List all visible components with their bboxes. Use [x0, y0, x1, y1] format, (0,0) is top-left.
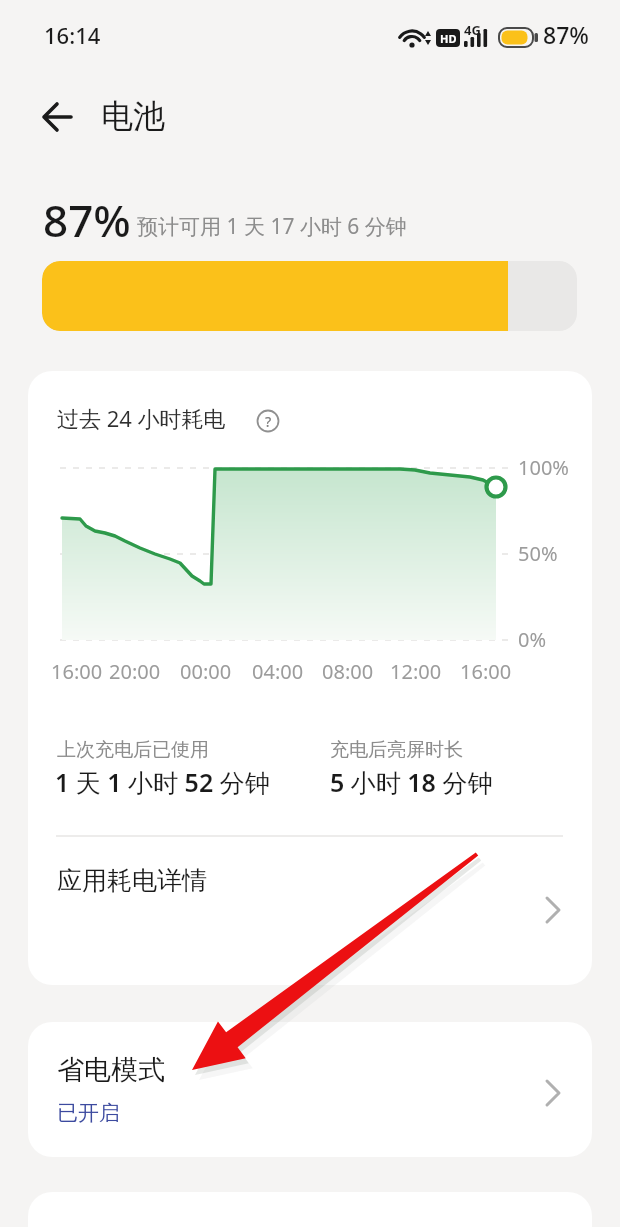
staticText: 过去 24 小时耗电	[57, 403, 226, 433]
staticText: 应用耗电详情	[57, 865, 207, 896]
staticText: 省电模式	[57, 1053, 165, 1087]
staticText: HD	[440, 31, 457, 46]
staticText: 电池	[101, 96, 165, 136]
staticText: 5 小时 18 分钟	[330, 765, 493, 799]
staticText: 08:00	[322, 658, 374, 685]
staticText: 50%	[518, 540, 558, 567]
staticText: 87%	[543, 19, 589, 50]
staticText: 87%	[43, 190, 131, 250]
staticText: 已开启	[57, 1100, 120, 1126]
staticText: 20:00	[109, 658, 161, 685]
staticText: 预计可用 1 天 17 小时 6 分钟	[137, 212, 407, 241]
staticText: 12:00	[390, 658, 442, 685]
button[interactable]: 省电模式	[28, 1022, 592, 1157]
staticText: 100%	[518, 454, 569, 481]
button[interactable]	[30, 95, 86, 151]
staticText: 上次充电后已使用	[57, 738, 209, 762]
staticText: 1 天 1 小时 52 分钟	[55, 765, 270, 799]
button[interactable]: 过去 24 小时耗电	[28, 371, 592, 985]
staticText: 4G	[464, 21, 481, 39]
staticText: 00:00	[180, 658, 232, 685]
staticText: 16:00	[51, 658, 103, 685]
staticText: 0%	[518, 626, 547, 653]
staticText: 04:00	[252, 658, 304, 685]
staticText: 16:00	[460, 658, 512, 685]
staticText: 16:14	[44, 20, 101, 50]
staticText: 充电后亮屏时长	[330, 738, 463, 762]
staticText: ?	[265, 412, 272, 431]
